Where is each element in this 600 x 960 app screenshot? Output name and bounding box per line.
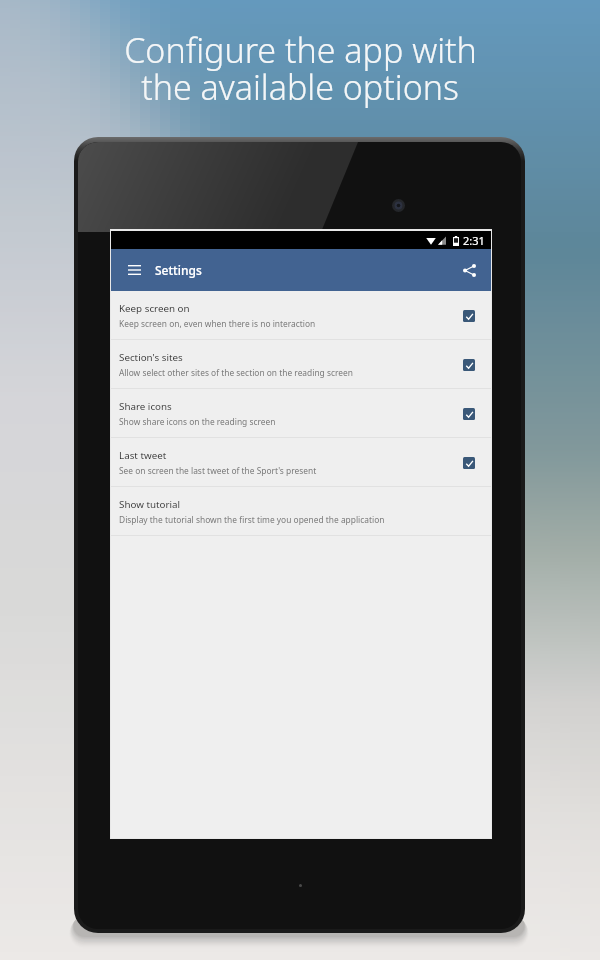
staticText: Show tutorial — [119, 498, 181, 511]
button[interactable]: Share — [455, 256, 483, 284]
staticText: Display the tutorial shown the first tim… — [119, 514, 385, 525]
staticText: 2:31 — [463, 233, 485, 248]
staticText: Show share icons on the reading screen — [119, 416, 276, 427]
staticText: Keep screen on — [119, 302, 190, 315]
staticText: See on screen the last tweet of the Spor… — [119, 465, 317, 476]
button[interactable]: Keep screen on — [111, 291, 491, 339]
button[interactable]: Section's sites — [111, 340, 491, 388]
button[interactable]: Last tweet — [111, 438, 491, 486]
button[interactable]: Share icons — [111, 389, 491, 437]
staticText: Allow select other sites of the section … — [119, 367, 353, 378]
staticText: Share icons — [119, 400, 172, 413]
button[interactable]: Open navigation drawer — [121, 257, 147, 283]
staticText: Configure the app with — [124, 27, 477, 73]
staticText: Section's sites — [119, 351, 183, 364]
button[interactable]: Show tutorial — [111, 487, 491, 535]
staticText: the available options — [141, 64, 459, 110]
staticText: Settings — [155, 262, 202, 278]
staticText: Keep screen on, even when there is no in… — [119, 318, 316, 329]
staticText: Last tweet — [119, 449, 167, 462]
